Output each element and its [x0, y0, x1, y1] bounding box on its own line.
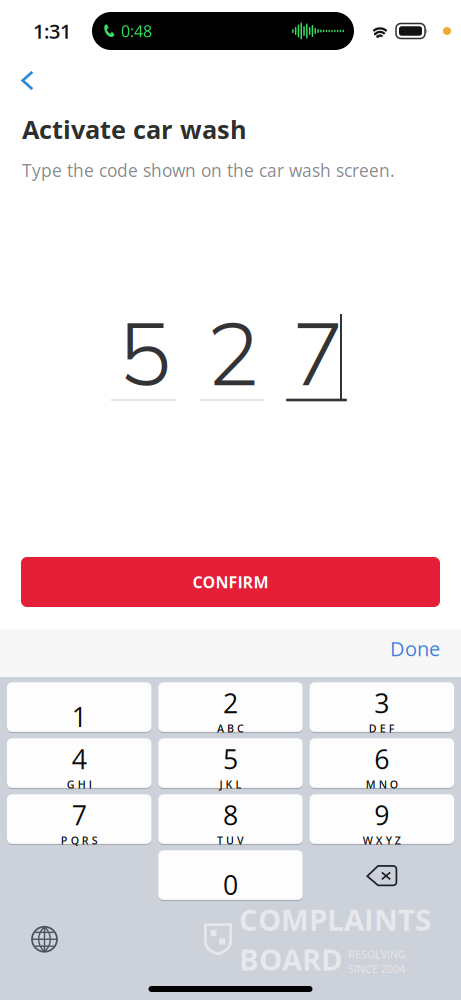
staticText: Activate car wash: [22, 112, 247, 146]
staticText: 0:48: [121, 20, 152, 42]
staticText: 1: [72, 698, 87, 735]
staticText: 1:31: [33, 17, 71, 45]
button[interactable]: 2: [158, 683, 303, 732]
staticText: 2: [206, 297, 259, 407]
button[interactable]: CONFIRM: [21, 557, 440, 607]
staticText: P Q R S: [61, 833, 98, 847]
button[interactable]: 3: [310, 683, 454, 732]
staticText: J K L: [219, 777, 241, 791]
staticText: M N O: [366, 777, 398, 791]
button[interactable]: 6: [310, 739, 454, 788]
button[interactable]: 8: [158, 795, 303, 844]
staticText: G H I: [67, 777, 92, 791]
staticText: CONFIRM: [192, 571, 268, 593]
button[interactable]: 0: [158, 851, 303, 900]
staticText: 5: [223, 741, 238, 777]
staticText: 8: [223, 797, 238, 833]
staticText: 6: [374, 741, 389, 777]
staticText: 2: [223, 685, 238, 721]
staticText: 7: [291, 297, 344, 407]
staticText: T U V: [217, 833, 244, 847]
staticText: RESOLVING: [348, 947, 406, 962]
staticText: Type the code shown on the car wash scre…: [22, 158, 395, 182]
button[interactable]: 5: [158, 739, 303, 788]
button[interactable]: Next keyboard: [0, 919, 57, 960]
staticText: COMPLAINTS: [239, 899, 431, 939]
staticText: 4: [72, 741, 87, 777]
button[interactable]: 9: [310, 795, 454, 844]
staticText: D E F: [369, 721, 395, 735]
button[interactable]: Delete: [310, 851, 454, 900]
staticText: BOARD: [239, 939, 343, 979]
staticText: Done: [390, 635, 440, 662]
staticText: 0: [223, 866, 238, 903]
staticText: A B C: [217, 721, 244, 735]
staticText: SINCE 2004: [348, 962, 405, 976]
button[interactable]: 1: [7, 683, 151, 732]
staticText: 7: [72, 797, 87, 833]
button[interactable]: 4: [7, 739, 151, 788]
button[interactable]: 7: [7, 795, 151, 844]
button[interactable]: Back: [0, 58, 50, 97]
staticText: W X Y Z: [363, 833, 401, 847]
button[interactable]: Done: [369, 627, 461, 670]
staticText: 5: [118, 297, 171, 407]
staticText: 3: [374, 685, 389, 721]
staticText: 9: [374, 797, 389, 833]
